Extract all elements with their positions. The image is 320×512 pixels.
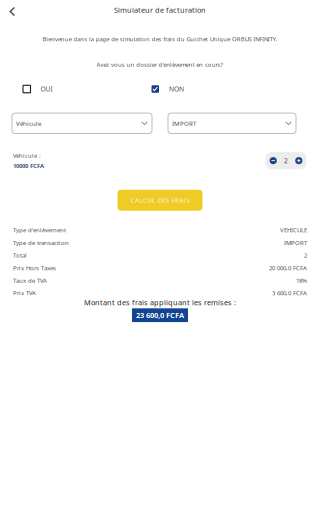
button[interactable]: Increase quantity	[295, 157, 302, 164]
staticText: 18%	[296, 276, 307, 284]
staticText: Prix TVA	[13, 289, 36, 297]
staticText: 10000 FCFA	[13, 162, 44, 170]
staticText: 2	[304, 251, 307, 259]
staticText: 3 600,0 FCFA	[272, 289, 307, 297]
staticText: 2	[284, 156, 288, 165]
button[interactable]: IMPORT	[168, 113, 296, 134]
staticText: Bienvenue dans la page de simulation des…	[42, 35, 277, 43]
button[interactable]: Back	[0, 0, 24, 20]
staticText: 20 000,0 FCFA	[269, 264, 307, 272]
staticText: Avez vous un dossier d'enlèvement en cou…	[97, 60, 223, 68]
button[interactable]: OUI	[23, 84, 52, 94]
button[interactable]: NON	[151, 84, 184, 94]
staticText: 23 600,0 FCFA	[136, 310, 184, 320]
staticText: Type d'enlèvement	[13, 226, 66, 234]
staticText: Véhicule :	[13, 152, 41, 160]
staticText: CALCUL DES FRAIS	[131, 196, 189, 204]
button[interactable]: Véhicule	[12, 113, 152, 134]
staticText: Véhicule	[16, 119, 41, 127]
staticText: Type de transaction	[13, 238, 69, 247]
staticText: NON	[169, 84, 184, 94]
staticText: Total	[13, 251, 27, 259]
button[interactable]: CALCUL DES FRAIS	[117, 190, 202, 211]
staticText: Taux de TVA	[13, 276, 47, 284]
button[interactable]: Decrease quantity	[270, 157, 277, 164]
staticText: IMPORT	[172, 119, 196, 127]
staticText: Prix Hors Taxes	[13, 264, 56, 272]
staticText: IMPORT	[284, 238, 307, 247]
staticText: OUI	[40, 84, 52, 94]
staticText: Simulateur de facturation	[114, 5, 206, 15]
staticText: Montant des frais appliquant les remises…	[84, 297, 236, 307]
staticText: VEHICULE	[280, 226, 307, 234]
